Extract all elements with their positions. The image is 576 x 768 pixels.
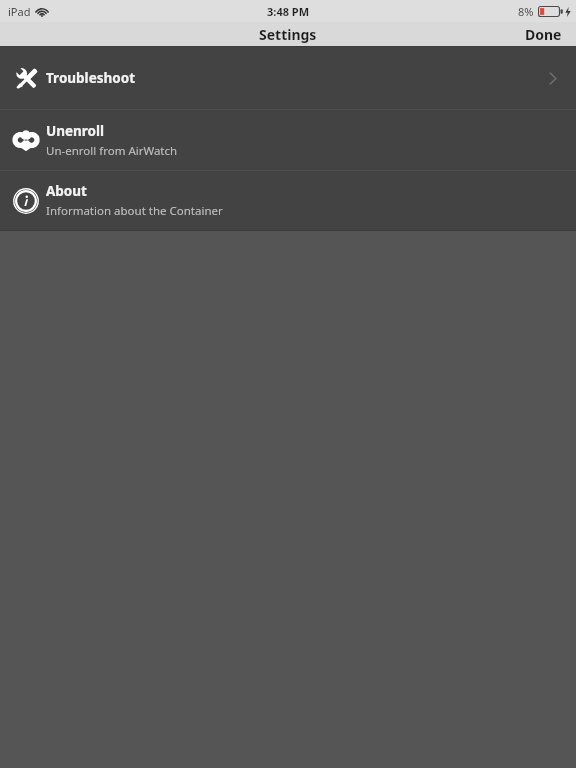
staticText: iPad	[8, 4, 31, 19]
button[interactable]: Unenroll	[0, 110, 576, 170]
button[interactable]: Troubleshoot	[0, 47, 576, 109]
staticText: 8%	[518, 4, 534, 19]
staticText: Settings	[259, 25, 317, 44]
staticText: Un-enroll from AirWatch	[46, 143, 178, 159]
staticText: Unenroll	[46, 122, 105, 140]
staticText: Troubleshoot	[46, 69, 135, 87]
other: About	[11, 186, 41, 216]
other: Unenroll	[11, 125, 41, 155]
button[interactable]: About	[0, 171, 576, 230]
staticText: 3:48 PM	[267, 4, 310, 19]
staticText: About	[46, 182, 87, 200]
staticText: Done	[525, 25, 562, 44]
button[interactable]: Done	[511, 22, 576, 46]
other: Troubleshoot	[11, 63, 41, 93]
staticText: Information about the Container	[46, 203, 223, 219]
